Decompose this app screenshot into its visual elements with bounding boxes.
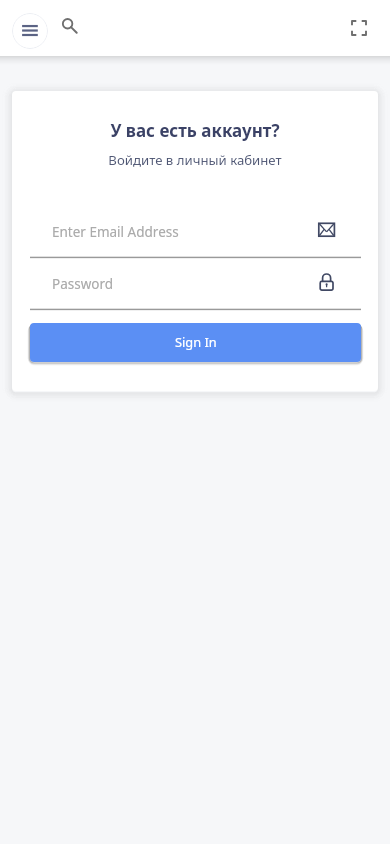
staticText: Password — [52, 275, 114, 293]
button[interactable]: Menu — [12, 13, 48, 49]
button[interactable]: Password — [30, 267, 361, 310]
button[interactable]: Enter Email Address — [30, 215, 361, 258]
button[interactable]: Search — [56, 13, 84, 41]
staticText: Sign In — [175, 333, 217, 350]
staticText: Enter Email Address — [52, 223, 179, 241]
button[interactable]: Sign In — [30, 323, 361, 362]
staticText: У вас есть аккаунт? — [12, 119, 378, 142]
staticText: Войдите в личный кабинет — [12, 151, 378, 169]
button[interactable]: Fullscreen — [345, 14, 373, 42]
